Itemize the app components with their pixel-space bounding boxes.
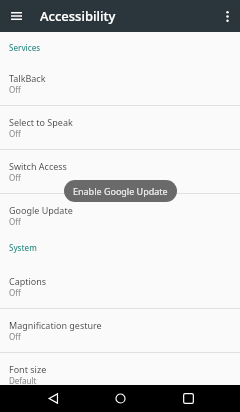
- button[interactable]: Switch Access: [0, 150, 240, 194]
- staticText: Enable Google Update: [73, 185, 168, 197]
- staticText: Default: [9, 375, 37, 385]
- button[interactable]: Google Update: [0, 194, 240, 238]
- button[interactable]: Open navigation menu: [4, 4, 28, 28]
- staticText: Off: [9, 172, 21, 183]
- button[interactable]: Recent apps: [168, 385, 208, 412]
- button[interactable]: Select to Speak: [0, 106, 240, 150]
- staticText: Google Update: [9, 204, 73, 216]
- staticText: Select to Speak: [9, 116, 73, 128]
- button[interactable]: TalkBack: [0, 62, 240, 106]
- staticText: Off: [9, 84, 21, 95]
- staticText: Off: [9, 216, 21, 227]
- button[interactable]: Captions: [0, 265, 240, 309]
- staticText: Magnification gesture: [9, 319, 102, 331]
- staticText: Off: [9, 287, 21, 298]
- button[interactable]: Font size: [0, 353, 240, 385]
- staticText: Services: [9, 42, 41, 53]
- button[interactable]: More options: [215, 4, 239, 28]
- staticText: Captions: [9, 275, 47, 287]
- button[interactable]: Back: [33, 385, 73, 412]
- staticText: System: [9, 242, 37, 253]
- button[interactable]: Magnification gesture: [0, 309, 240, 353]
- staticText: Font size: [9, 363, 47, 375]
- staticText: Off: [9, 128, 21, 139]
- staticText: Off: [9, 331, 21, 342]
- staticText: TalkBack: [9, 72, 46, 84]
- button[interactable]: Home: [100, 385, 140, 412]
- staticText: Accessibility: [40, 7, 116, 25]
- staticText: Switch Access: [9, 160, 67, 172]
